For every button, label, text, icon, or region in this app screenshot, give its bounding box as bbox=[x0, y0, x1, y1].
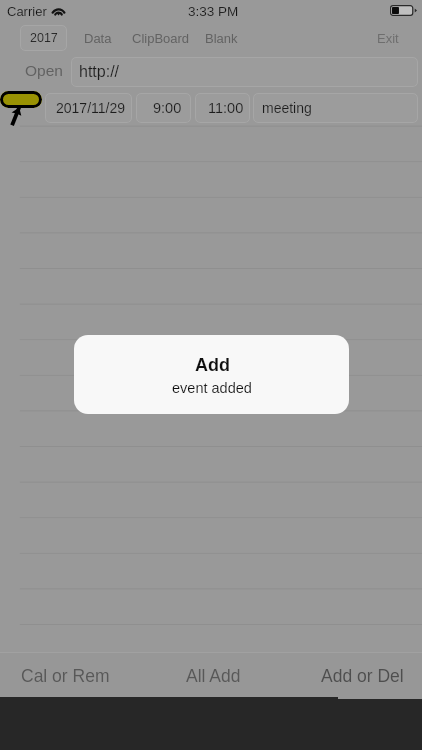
staticText: Add or Del bbox=[321, 666, 404, 686]
button[interactable]: 9:00 bbox=[136, 93, 191, 123]
staticText: Cal or Rem bbox=[21, 666, 110, 686]
other: Pointer bbox=[8, 104, 28, 128]
staticText: 9:00 bbox=[153, 100, 182, 116]
button[interactable]: 2017/11/29 bbox=[45, 93, 132, 123]
staticText: 2017 bbox=[30, 31, 58, 45]
staticText: event added bbox=[172, 380, 252, 396]
staticText: All Add bbox=[186, 666, 241, 686]
staticText: Open bbox=[25, 62, 63, 79]
button[interactable]: Blank bbox=[205, 31, 238, 46]
staticText: Carrier bbox=[7, 4, 47, 19]
staticText: 2017/11/29 bbox=[56, 100, 126, 116]
button[interactable]: 2017 bbox=[20, 25, 67, 51]
button[interactable]: Cal or Rem bbox=[0, 653, 139, 698]
button[interactable]: 11:00 bbox=[195, 93, 250, 123]
staticText: meeting bbox=[262, 100, 312, 116]
button[interactable]: Selected marker bbox=[0, 91, 42, 108]
button[interactable]: http:// bbox=[71, 57, 418, 87]
button[interactable]: Data bbox=[84, 31, 112, 46]
button[interactable]: Exit bbox=[377, 31, 399, 46]
staticText: 3:33 PM bbox=[188, 4, 239, 19]
staticText: 11:00 bbox=[208, 100, 244, 116]
staticText: http:// bbox=[79, 63, 120, 81]
button[interactable]: meeting bbox=[253, 93, 418, 123]
button[interactable]: ClipBoard bbox=[132, 31, 190, 46]
button[interactable]: Add or Del bbox=[288, 653, 422, 698]
button[interactable]: All Add bbox=[139, 653, 287, 698]
staticText: Add bbox=[195, 355, 230, 375]
